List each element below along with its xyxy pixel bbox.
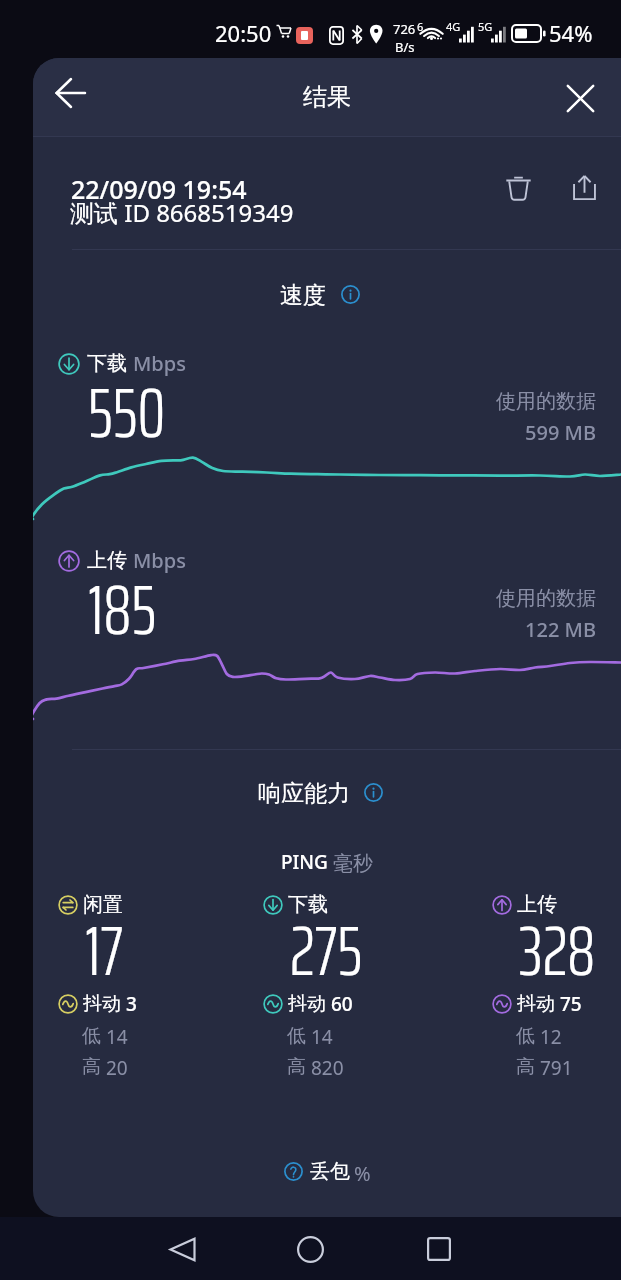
staticText: %	[354, 1160, 371, 1187]
staticText: 使用的数据	[496, 389, 596, 414]
staticText: 高	[287, 1055, 306, 1079]
staticText: 使用的数据	[496, 586, 596, 611]
staticText: 毫秒	[333, 851, 373, 876]
staticText: Mbps	[133, 350, 186, 377]
staticText: 17	[85, 896, 124, 1006]
button[interactable]: Close	[545, 63, 615, 133]
staticText: 54%	[549, 18, 593, 48]
staticText: 12	[540, 1024, 562, 1050]
staticText: 791	[540, 1055, 573, 1081]
staticText: 22/09/09 19:54	[71, 172, 247, 206]
staticText: 测试 ID 8668519349	[70, 196, 294, 229]
staticText: 20	[106, 1055, 128, 1081]
staticText: 结果	[303, 82, 351, 112]
staticText: 上传	[517, 892, 557, 917]
staticText: 低	[516, 1024, 535, 1048]
staticText: 闲置	[83, 892, 123, 917]
button[interactable]: Back	[36, 58, 106, 128]
staticText: 速度	[280, 281, 326, 310]
staticText: 275	[290, 896, 363, 1006]
staticText: B/s	[395, 38, 415, 56]
staticText: PING	[281, 849, 328, 875]
staticText: 抖动	[517, 992, 555, 1016]
staticText: 抖动	[83, 992, 121, 1016]
button[interactable]: Recents	[410, 1220, 468, 1278]
staticText: 低	[82, 1024, 101, 1048]
staticText: 5G	[478, 19, 493, 34]
staticText: 820	[311, 1055, 344, 1081]
staticText: 响应能力	[258, 779, 350, 808]
staticText: 低	[287, 1024, 306, 1048]
staticText: 4G	[446, 19, 461, 34]
button[interactable]: Back	[153, 1220, 211, 1278]
staticText: 726	[393, 20, 416, 38]
staticText: 122 MB	[525, 616, 596, 643]
button[interactable]: Share	[556, 159, 613, 216]
staticText: 丢包	[310, 1159, 350, 1184]
staticText: 328	[519, 896, 596, 1006]
staticText: 20:50	[215, 18, 272, 48]
staticText: Mbps	[133, 547, 186, 574]
staticText: 高	[516, 1055, 535, 1079]
button[interactable]: Home	[281, 1220, 339, 1278]
staticText: 6	[417, 19, 424, 34]
staticText: 14	[106, 1024, 128, 1050]
staticText: 599 MB	[525, 419, 596, 446]
staticText: 上传	[87, 548, 127, 573]
staticText: 550	[88, 358, 166, 468]
staticText: 14	[311, 1024, 333, 1050]
staticText: 60	[331, 991, 353, 1017]
staticText: 抖动	[288, 992, 326, 1016]
staticText: 高	[82, 1055, 101, 1079]
button[interactable]: Delete	[490, 159, 547, 216]
staticText: 3	[126, 991, 137, 1017]
staticText: 75	[560, 991, 582, 1017]
staticText: 185	[88, 555, 157, 665]
staticText: 下载	[87, 351, 127, 376]
staticText: 下载	[288, 892, 328, 917]
